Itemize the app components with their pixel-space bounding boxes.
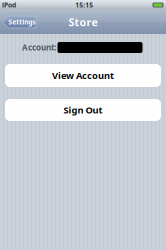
staticText: Store [68,15,97,29]
staticText: View Account [52,69,114,82]
staticText: 15:15 [75,1,93,9]
staticText: Settings [8,18,35,26]
button[interactable]: Sign Out [5,99,161,121]
staticText: Sign Out [63,104,102,116]
staticText: Account: [22,42,56,53]
button[interactable]: View Account [5,64,161,87]
staticText: iPod [2,1,16,9]
button[interactable]: Settings [2,16,36,28]
